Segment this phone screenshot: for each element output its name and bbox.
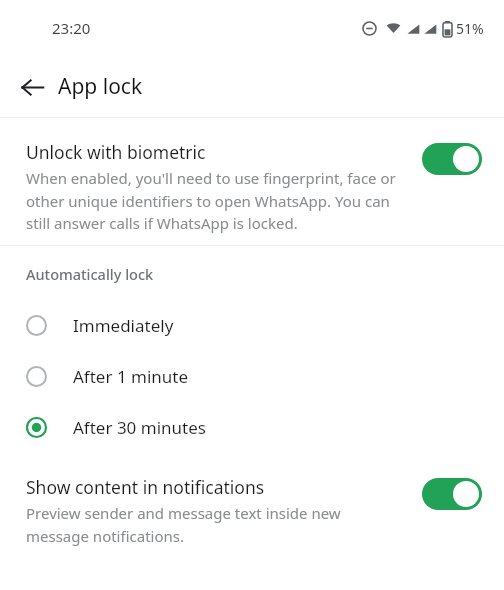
staticText: After 30 minutes (73, 416, 206, 439)
button[interactable]: Unlock with biometric (0, 140, 504, 233)
staticText: After 1 minute (73, 365, 189, 388)
button[interactable]: Show content in notifications (0, 475, 504, 546)
staticText: Immediately (73, 314, 174, 337)
button[interactable]: Back (10, 65, 54, 109)
button[interactable]: Toggle (422, 143, 482, 175)
button[interactable]: After 30 minutes (0, 402, 504, 453)
button[interactable]: After 1 minute (0, 351, 504, 402)
staticText: 51% (456, 19, 484, 38)
staticText: When enabled, you'll need to use fingerp… (26, 168, 402, 233)
staticText: Preview sender and message text inside n… (26, 503, 376, 546)
staticText: Unlock with biometric (26, 140, 206, 164)
staticText: Show content in notifications (26, 475, 265, 499)
button[interactable]: Immediately (0, 300, 504, 351)
button[interactable]: Toggle (422, 478, 482, 510)
staticText: App lock (58, 72, 143, 101)
staticText: Automatically lock (26, 264, 154, 284)
staticText: 23:20 (52, 18, 91, 38)
